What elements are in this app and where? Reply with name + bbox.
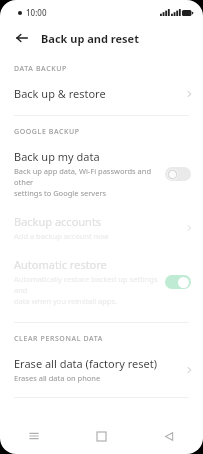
- button[interactable]: Recent apps: [0, 422, 67, 450]
- staticText: Add a backup account now: [14, 231, 109, 241]
- button[interactable]: Backup accounts: [0, 214, 203, 253]
- button[interactable]: Back: [11, 27, 33, 49]
- staticText: Erases all data on phone: [14, 373, 101, 383]
- staticText: Back up and reset: [41, 31, 139, 46]
- staticText: 10:00: [26, 7, 47, 18]
- button[interactable]: Toggle off: [165, 167, 191, 181]
- staticText: Back up & restore: [14, 86, 106, 101]
- button[interactable]: Home: [67, 422, 135, 450]
- button[interactable]: Back: [135, 422, 203, 450]
- button[interactable]: Back up & restore: [0, 86, 203, 115]
- staticText: Back up app data, Wi-Fi passwords and ot…: [14, 166, 159, 198]
- staticText: DATA BACKUP: [14, 64, 67, 74]
- button[interactable]: Toggle on: [165, 275, 191, 289]
- button[interactable]: Automatic restore: [0, 257, 203, 318]
- staticText: Back up my data: [14, 149, 100, 164]
- button[interactable]: Erase all data (factory reset): [0, 356, 203, 397]
- staticText: CLEAR PERSONAL DATA: [14, 334, 103, 344]
- staticText: Automatic restore: [14, 257, 107, 272]
- staticText: Backup accounts: [14, 214, 102, 229]
- staticText: Automatically restore backed up settings…: [14, 274, 159, 306]
- staticText: GOOGLE BACKUP: [14, 127, 80, 137]
- staticText: Erase all data (factory reset): [14, 356, 158, 371]
- button[interactable]: Back up my data: [0, 149, 203, 208]
